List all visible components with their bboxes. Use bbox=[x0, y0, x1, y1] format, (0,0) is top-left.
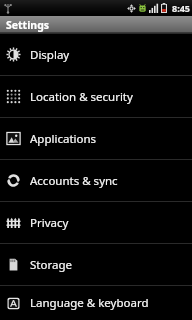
button[interactable]: Location & security bbox=[0, 76, 192, 117]
button[interactable]: Storage bbox=[0, 244, 192, 285]
button[interactable]: Applications bbox=[0, 118, 192, 159]
button[interactable]: Display bbox=[0, 34, 192, 75]
staticText: 8:45 bbox=[172, 2, 190, 14]
staticText: Location & security bbox=[30, 89, 133, 105]
staticText: Display bbox=[30, 47, 70, 63]
staticText: Language & keyboard bbox=[30, 295, 149, 311]
staticText: Privacy bbox=[30, 215, 69, 231]
staticText: Applications bbox=[30, 131, 97, 147]
staticText: Settings bbox=[6, 18, 50, 32]
button[interactable]: Privacy bbox=[0, 202, 192, 243]
staticText: Accounts & sync bbox=[30, 173, 118, 189]
button[interactable]: Language & keyboard bbox=[0, 286, 192, 320]
staticText: Storage bbox=[30, 257, 72, 273]
button[interactable]: Accounts & sync bbox=[0, 160, 192, 201]
